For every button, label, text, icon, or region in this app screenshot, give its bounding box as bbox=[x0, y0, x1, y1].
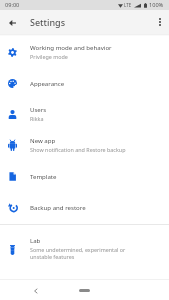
staticText: Settings bbox=[30, 16, 66, 28]
button[interactable]: Home bbox=[79, 289, 90, 292]
button[interactable]: Lab bbox=[0, 229, 169, 263]
button[interactable]: New app bbox=[0, 129, 169, 163]
staticText: Rikka bbox=[30, 115, 44, 122]
staticText: Backup and restore bbox=[30, 203, 86, 211]
button[interactable]: Template bbox=[0, 163, 169, 194]
staticText: Users bbox=[30, 105, 47, 113]
staticText: Lab bbox=[30, 236, 41, 244]
button[interactable]: Working mode and behavior bbox=[0, 36, 169, 70]
staticText: 09:00 bbox=[5, 1, 20, 9]
staticText: 100% bbox=[149, 1, 164, 9]
staticText: LTE bbox=[124, 2, 132, 8]
staticText: Appearance bbox=[30, 79, 65, 87]
staticText: Template bbox=[30, 172, 57, 180]
staticText: Show notification and Restore backup bbox=[30, 146, 126, 153]
staticText: Working mode and behavior bbox=[30, 43, 112, 51]
button[interactable]: More options bbox=[153, 15, 167, 29]
button[interactable]: Navigate up bbox=[5, 15, 20, 30]
button[interactable]: Users bbox=[0, 98, 169, 129]
button[interactable]: Appearance bbox=[0, 70, 169, 98]
button[interactable]: Back bbox=[29, 284, 42, 297]
staticText: New app bbox=[30, 136, 56, 144]
staticText: Privilege mode bbox=[30, 53, 68, 60]
button[interactable]: Backup and restore bbox=[0, 194, 169, 224]
staticText: Some undetermined, experimental or unsta… bbox=[30, 246, 148, 261]
